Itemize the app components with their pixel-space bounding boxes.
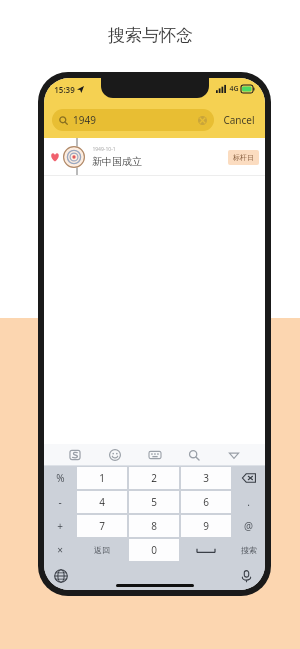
staticText: 搜索与怀念 xyxy=(108,25,193,46)
staticText: @ xyxy=(244,519,253,533)
button[interactable]: Voice input xyxy=(240,570,253,583)
staticText: + xyxy=(57,519,63,533)
button[interactable]: × xyxy=(45,539,75,561)
button[interactable]: + xyxy=(45,515,75,537)
button[interactable] xyxy=(181,539,231,561)
button[interactable]: 标杆日 xyxy=(228,150,259,165)
button[interactable]: Collapse keyboard xyxy=(225,446,243,464)
button[interactable]: 8 xyxy=(129,515,179,537)
button[interactable]: - xyxy=(45,491,75,513)
staticText: - xyxy=(58,495,62,509)
staticText: 15:39 xyxy=(54,84,75,95)
staticText: 0 xyxy=(151,543,157,557)
staticText: 5 xyxy=(151,495,157,509)
button[interactable]: 5 xyxy=(129,491,179,513)
staticText: Cancel xyxy=(223,113,255,127)
button[interactable]: 搜索 xyxy=(233,539,264,561)
button[interactable]: Change language xyxy=(54,569,68,583)
staticText: × xyxy=(57,543,63,557)
staticText: 4 xyxy=(99,495,105,509)
staticText: 9 xyxy=(203,519,209,533)
staticText: 返回 xyxy=(94,545,110,555)
staticText: 新中国成立 xyxy=(92,155,142,168)
staticText: % xyxy=(56,471,65,485)
button[interactable]: 9 xyxy=(181,515,231,537)
staticText: 1 xyxy=(99,471,105,485)
button[interactable]: @ xyxy=(233,515,264,537)
button[interactable]: 0 xyxy=(129,539,179,561)
button[interactable]: Clear xyxy=(198,116,207,125)
button[interactable]: 1 xyxy=(77,467,127,489)
staticText: 7 xyxy=(99,519,105,533)
button[interactable]: Keyboard layout xyxy=(146,446,164,464)
staticText: 搜索 xyxy=(241,545,257,555)
staticText: 8 xyxy=(151,519,157,533)
staticText: 6 xyxy=(203,495,209,509)
button[interactable]: 7 xyxy=(77,515,127,537)
staticText: 1949 xyxy=(73,113,96,127)
button[interactable]: Cancel xyxy=(221,110,257,130)
button[interactable]: . xyxy=(233,491,264,513)
staticText: 3 xyxy=(203,471,209,485)
button[interactable]: 3 xyxy=(181,467,231,489)
staticText: 1949-10-1 xyxy=(92,146,116,153)
button[interactable]: 6 xyxy=(181,491,231,513)
staticText: . xyxy=(247,495,250,509)
button[interactable]: 1949-10-1 xyxy=(44,138,265,176)
button[interactable]: 1949 xyxy=(52,109,214,131)
button[interactable]: Sogou input xyxy=(66,446,84,464)
button[interactable]: % xyxy=(45,467,75,489)
button[interactable]: Search xyxy=(185,446,203,464)
button[interactable]: 2 xyxy=(129,467,179,489)
button[interactable]: 返回 xyxy=(77,539,127,561)
staticText: 4G xyxy=(229,84,239,94)
staticText: 标杆日 xyxy=(233,153,254,162)
button[interactable]: Emoji xyxy=(106,446,124,464)
button[interactable]: 4 xyxy=(77,491,127,513)
button[interactable] xyxy=(233,467,264,489)
staticText: 2 xyxy=(151,471,157,485)
